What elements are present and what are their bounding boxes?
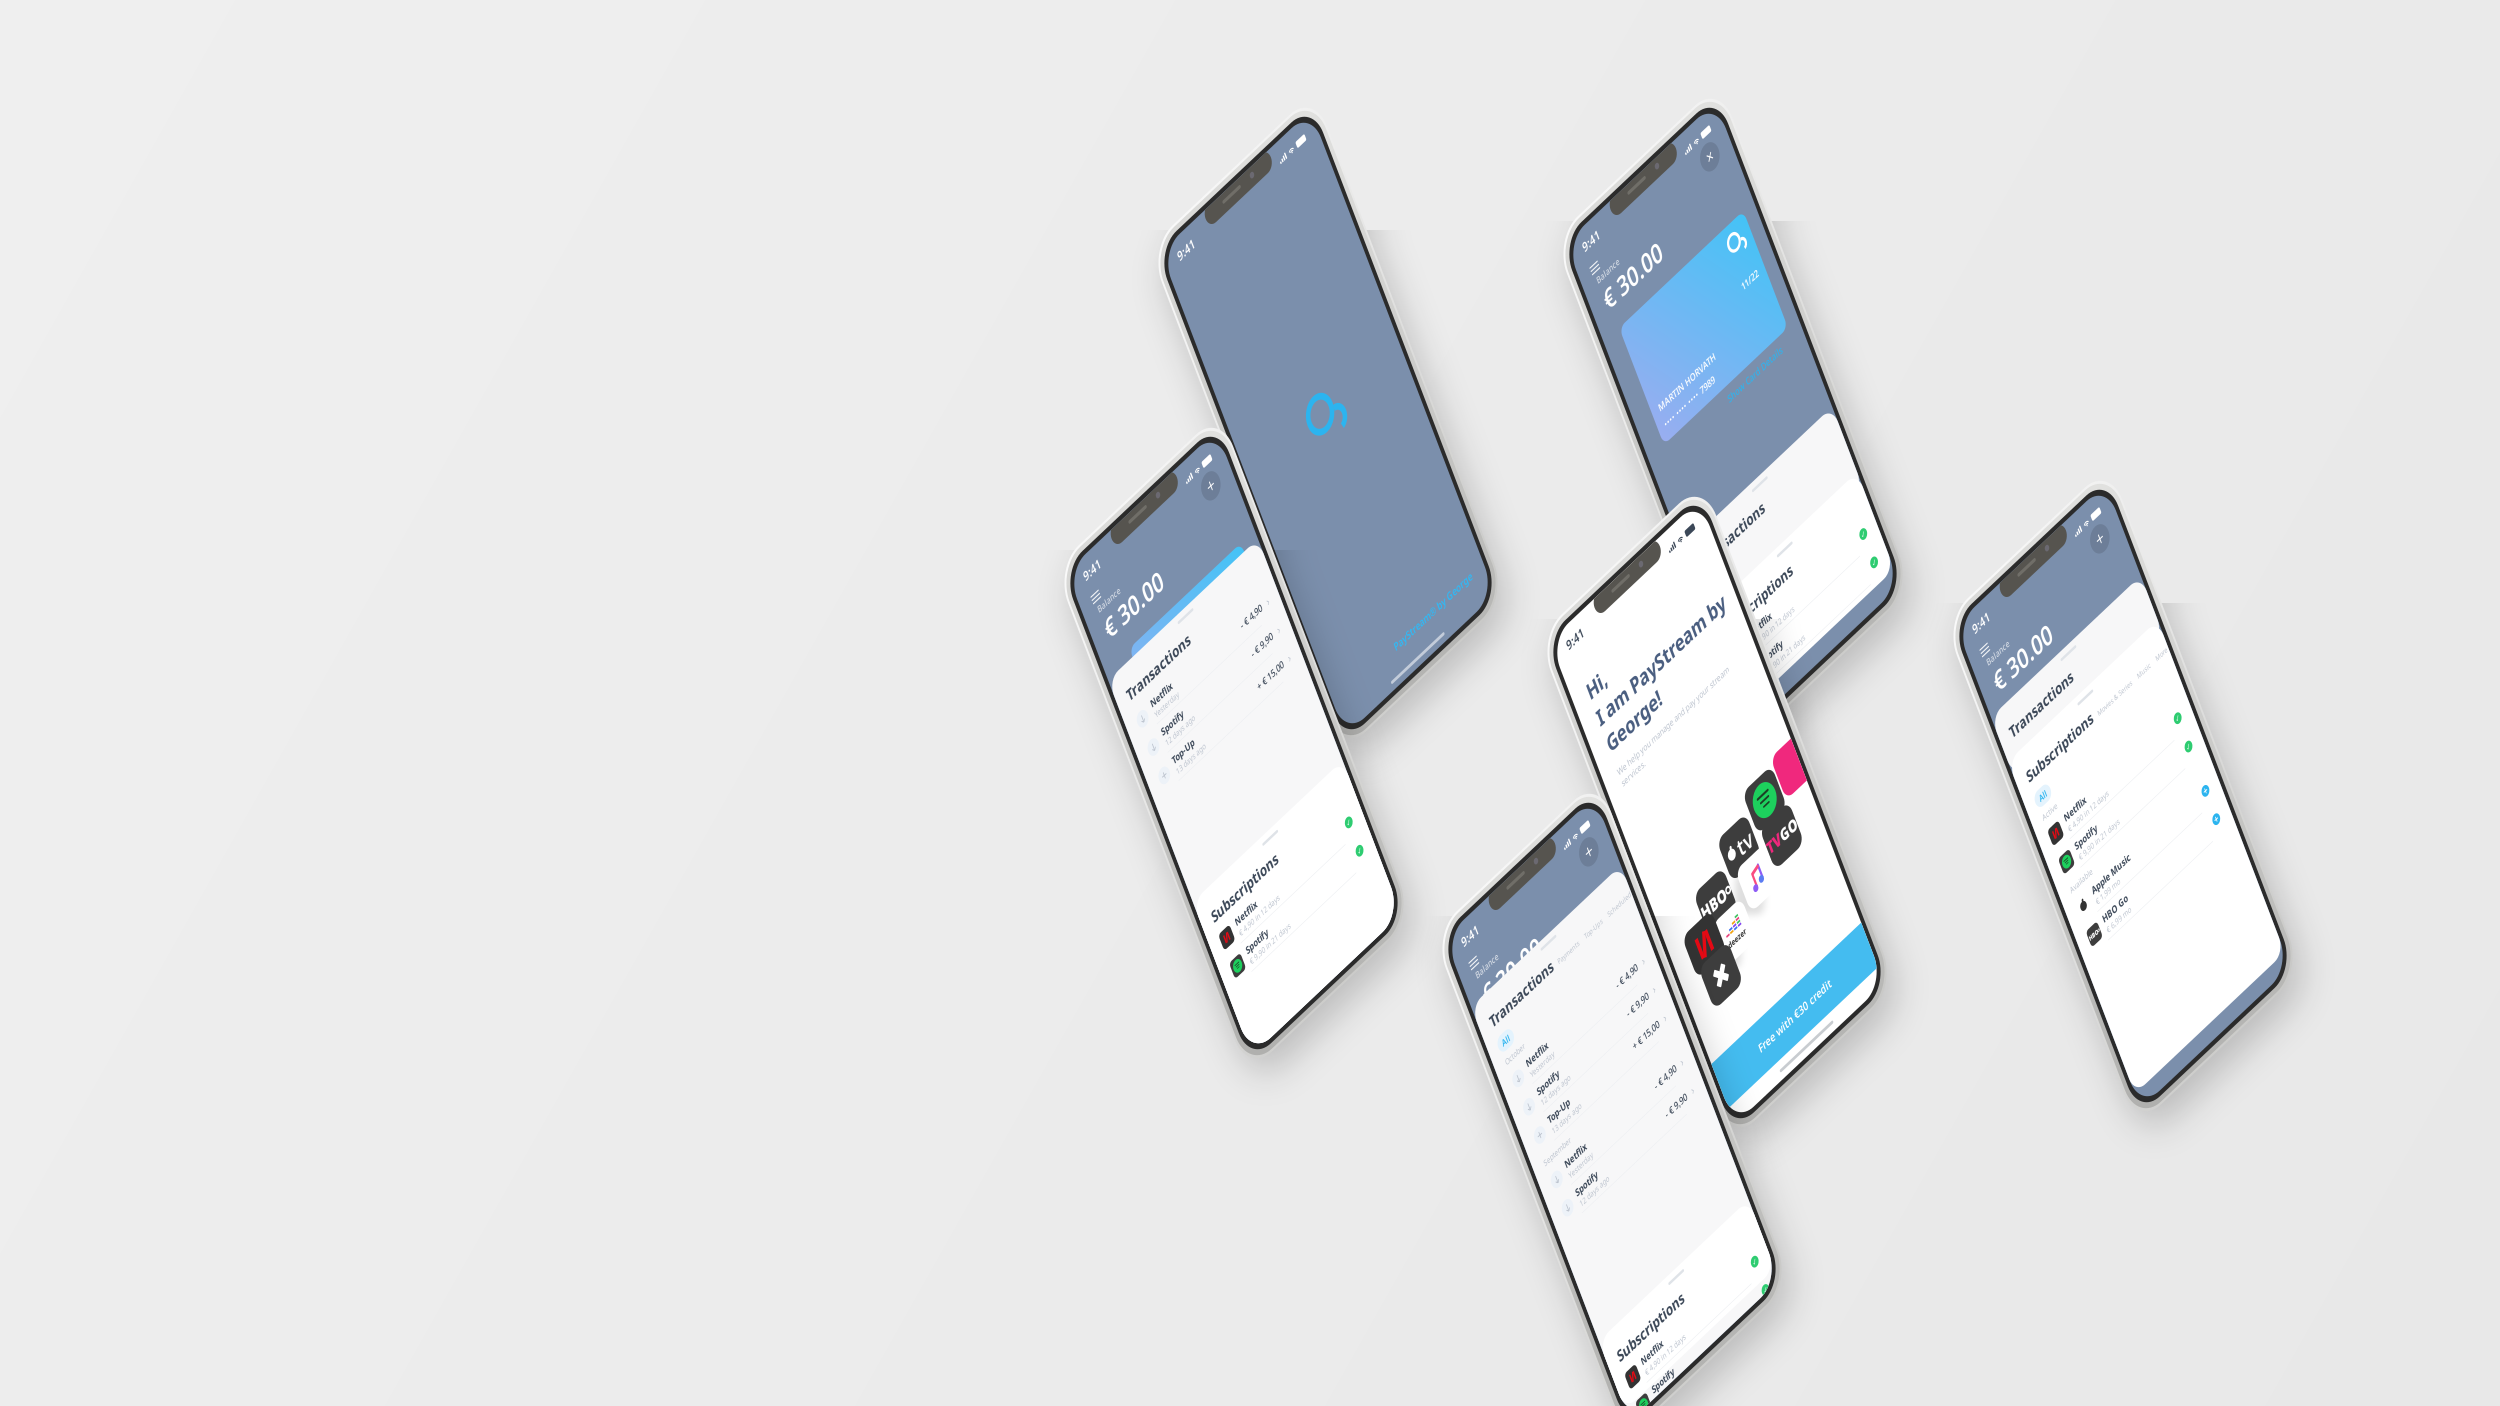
button[interactable]: Spotify	[1449, 1386, 1798, 1406]
button[interactable]: Menu	[1473, 998, 1503, 1024]
staticText: Music	[2237, 894, 2267, 909]
staticText: We help you manage and pay your stream s…	[1584, 876, 1842, 912]
button[interactable]: More	[2280, 894, 2306, 909]
staticText: October	[1471, 1158, 1516, 1174]
button[interactable]: Menu	[1594, 303, 1624, 329]
button[interactable]: Menu	[1984, 685, 2014, 711]
staticText: Transactions	[1982, 811, 2127, 841]
button[interactable]: All	[1469, 1127, 1504, 1152]
staticText: 11/22	[1842, 495, 1880, 514]
staticText: Spotify	[1629, 964, 1679, 984]
button[interactable]: Netflix	[1570, 913, 1919, 959]
staticText: € 30.00	[1099, 671, 1230, 722]
staticText: 9:41	[1596, 267, 1634, 291]
staticText: Balance	[1099, 654, 1151, 672]
staticText: Spotify	[1128, 871, 1178, 891]
staticText: - € 4,90	[1711, 1189, 1760, 1209]
button[interactable]: Top-Up	[1449, 1268, 1798, 1314]
button[interactable]: Scheduled	[1743, 1097, 1797, 1112]
button[interactable]: Top-Up	[1071, 912, 1420, 958]
button[interactable]: Payments	[1627, 1097, 1676, 1112]
staticText: € 9,90 in 21 days	[2019, 1045, 2112, 1060]
staticText: Subscriptions	[1592, 881, 1744, 911]
staticText: Scheduled	[1743, 1097, 1797, 1112]
staticText: 12 days ago	[1506, 1247, 1573, 1262]
staticText: Top-Up	[1506, 1273, 1556, 1293]
staticText: Balance	[1988, 707, 2040, 725]
button[interactable]: Show Card Details	[1570, 605, 1919, 641]
staticText: 7989	[1704, 572, 1736, 592]
staticText: Hi, I am PayStream by George!	[1584, 735, 1880, 862]
staticText: ›	[1393, 878, 1398, 901]
button[interactable]: Netflix	[1449, 1176, 1798, 1222]
staticText: Transactions	[1592, 775, 1737, 805]
button[interactable]: Apple Music	[1960, 1092, 2309, 1138]
button[interactable]: Spotify	[1960, 1020, 2309, 1066]
button[interactable]: Spotify	[1071, 866, 1420, 912]
staticText: ›	[1771, 1233, 1776, 1256]
staticText: Netflix	[1128, 825, 1177, 845]
staticText: 13 days ago	[1128, 937, 1195, 953]
button[interactable]: Netflix	[1071, 820, 1420, 866]
button[interactable]: Netflix	[1960, 974, 2309, 1020]
staticText: € 9,90 in 21 days	[1629, 984, 1722, 1000]
staticText: Netflix	[1506, 1181, 1555, 1201]
button[interactable]: Music	[2237, 894, 2267, 909]
staticText: Yesterday	[1506, 1201, 1561, 1216]
staticText: ✓	[2274, 990, 2284, 1004]
staticText: - € 4,90	[1711, 1353, 1760, 1373]
button[interactable]: Netflix	[1449, 1340, 1798, 1386]
staticText: Top-Ups	[1689, 1097, 1730, 1112]
staticText: € 4,90 in 12 days	[2019, 999, 2112, 1014]
button[interactable]: Menu	[1095, 632, 1125, 658]
staticText: Spotify	[1506, 1227, 1556, 1247]
staticText: Show Card Details	[1745, 613, 1871, 633]
staticText: € 4,90 in 12 days	[1629, 938, 1722, 954]
staticText: Payments	[1627, 1097, 1676, 1112]
button[interactable]: Add	[1730, 986, 1774, 1030]
staticText: 13 days ago	[1506, 1293, 1573, 1308]
button[interactable]: Free with €30 credit	[1554, 1338, 1903, 1406]
staticText: More	[2280, 894, 2306, 909]
button[interactable]: Spotify	[1570, 959, 1919, 1005]
staticText: Netflix	[1629, 918, 1678, 938]
staticText: ›	[1771, 1279, 1776, 1302]
button[interactable]: Add	[1352, 620, 1396, 664]
staticText: Subscriptions	[1982, 883, 2134, 913]
button[interactable]: Top-Ups	[1689, 1097, 1730, 1112]
button[interactable]: Spotify	[1449, 1222, 1798, 1268]
staticText: Balance	[1598, 325, 1650, 343]
staticText: PayStream® by George	[1306, 987, 1486, 1008]
